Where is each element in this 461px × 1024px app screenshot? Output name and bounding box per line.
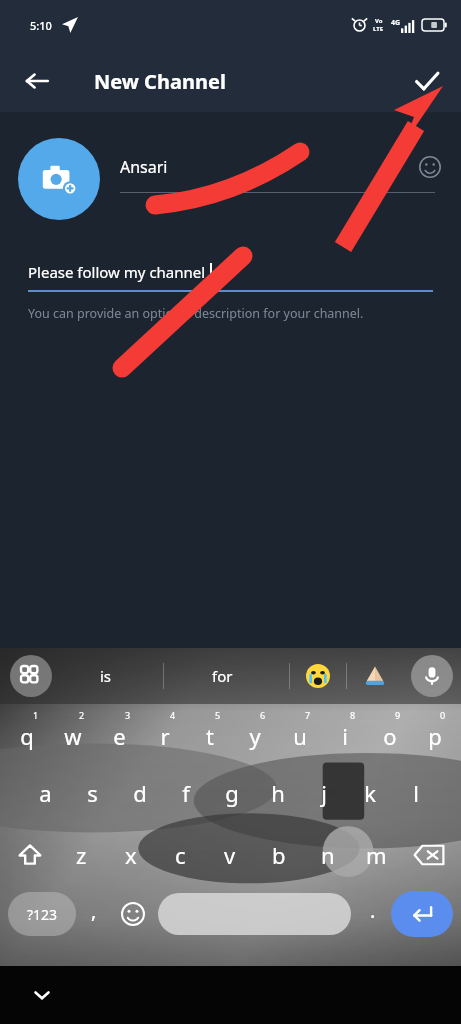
staticText: q [20,721,34,751]
button[interactable]: ?123 [8,892,76,936]
button[interactable]: a [22,770,69,816]
staticText: You can provide an optional description … [28,305,364,322]
button[interactable]: v [205,832,254,878]
button[interactable]: m [352,832,401,878]
staticText: w [64,721,82,751]
staticText: e [113,721,126,751]
button[interactable]: . [355,888,391,940]
staticText: m [366,840,387,870]
button[interactable]: Shift [4,832,56,878]
button[interactable]: k [347,770,393,816]
staticText: i [342,721,348,751]
button[interactable]: Space [158,893,351,935]
button[interactable]: for [212,666,233,686]
staticText: y [249,721,261,751]
staticText: v [224,840,236,870]
button[interactable]: 9 [367,708,412,754]
staticText: 1 [33,709,39,721]
staticText: h [271,778,285,808]
button[interactable]: j [301,770,347,816]
staticText: . [370,897,376,924]
staticText: 4G [391,18,401,28]
staticText: p [428,721,442,751]
staticText: ?123 [27,905,58,924]
staticText: g [225,778,239,808]
staticText: j [321,778,327,808]
button[interactable]: is [100,666,112,686]
staticText: 8 [350,709,356,721]
staticText: x [125,840,137,870]
button[interactable]: c [156,832,205,878]
staticText: 0 [440,709,446,721]
button[interactable]: 5 [187,708,232,754]
staticText: LTE [373,25,384,33]
button[interactable]: g [209,770,255,816]
button[interactable]: 1 [4,708,50,754]
button[interactable]: l [393,770,439,816]
button[interactable]: f [163,770,209,816]
button[interactable]: 3 [96,708,142,754]
staticText: Ansari [120,156,413,178]
staticText: 2 [79,709,85,721]
button[interactable]: Done [403,57,451,105]
staticText: d [133,778,147,808]
button[interactable]: 6 [232,708,277,754]
staticText: z [76,840,87,870]
staticText: l [413,778,419,808]
button[interactable]: Emoji [413,150,447,184]
staticText: b [272,840,286,870]
staticText: f [182,778,190,808]
staticText: n [321,840,335,870]
button[interactable]: Crying emoji [301,659,335,693]
button[interactable]: 8 [322,708,367,754]
staticText: a [39,778,52,808]
button[interactable]: d [116,770,163,816]
button[interactable]: Voice input [411,655,453,697]
button[interactable]: 7 [277,708,322,754]
button[interactable]: Enter [391,891,453,937]
staticText: 4 [170,709,176,721]
button[interactable]: Folded hands emoji [358,659,392,693]
staticText: 9 [395,709,401,721]
button[interactable]: n [303,832,352,878]
staticText: New Channel [94,68,226,95]
button[interactable]: 0 [412,708,457,754]
button[interactable]: Backspace [401,832,457,878]
staticText: 3 [125,709,131,721]
staticText: k [364,778,376,808]
button[interactable]: Set channel photo [18,138,100,220]
button[interactable]: s [69,770,116,816]
button[interactable]: Hide keyboard [24,977,60,1013]
staticText: 5 [215,709,221,721]
staticText: s [87,778,98,808]
button[interactable]: 2 [50,708,96,754]
button[interactable]: h [255,770,301,816]
staticText: , [91,897,97,924]
button[interactable]: x [106,832,156,878]
staticText: 7 [305,709,311,721]
staticText: Vo [375,17,383,25]
staticText: r [160,721,170,751]
staticText: 5:10 [30,18,52,33]
staticText: o [383,721,397,751]
staticText: t [206,721,214,751]
button[interactable]: Back [14,58,60,104]
staticText: Please follow my channel [28,262,206,282]
button[interactable]: 4 [142,708,187,754]
staticText: 6 [260,709,266,721]
button[interactable]: z [56,832,106,878]
button[interactable]: b [254,832,303,878]
button[interactable]: , [76,888,112,940]
button[interactable]: Keyboard menu [10,655,52,697]
staticText: u [293,721,307,751]
button[interactable]: Emoji keyboard [112,888,154,940]
staticText: c [175,840,186,870]
